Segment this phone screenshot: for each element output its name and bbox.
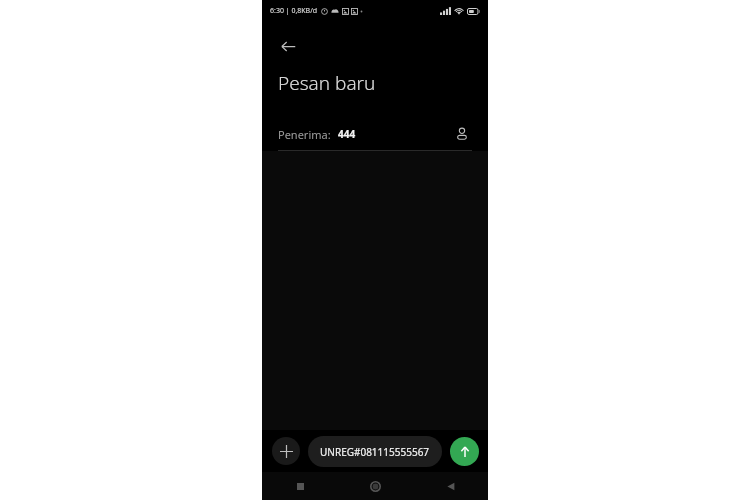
button[interactable]: Add attachment xyxy=(272,437,300,465)
button[interactable]: Send xyxy=(450,437,479,466)
button[interactable]: Penerima: xyxy=(262,118,488,150)
staticText: 6:30 | 0,8KB/d xyxy=(270,6,318,16)
staticText: Pesan baru xyxy=(278,70,376,96)
staticText: 444 xyxy=(338,127,356,141)
button[interactable]: Choose contact xyxy=(450,122,474,146)
staticText: UNREG#0811155555677 xyxy=(320,445,430,459)
button[interactable]: Back xyxy=(413,472,488,500)
staticText: Penerima: xyxy=(278,127,331,142)
button[interactable]: UNREG#0811155555677 xyxy=(308,436,442,467)
button[interactable]: Back xyxy=(272,30,304,62)
button[interactable]: Home xyxy=(338,472,413,500)
button[interactable]: Recent apps xyxy=(262,472,338,500)
